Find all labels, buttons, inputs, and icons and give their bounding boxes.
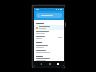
button[interactable]: Back [39,62,42,65]
button[interactable]: Search [36,13,62,18]
button[interactable]: Recent apps [56,62,59,65]
button[interactable] [34,44,64,49]
other: Search [38,15,40,17]
button[interactable] [34,49,64,54]
button[interactable]: Home [48,62,51,65]
button[interactable] [34,35,64,40]
button[interactable] [34,58,64,61]
button[interactable] [34,25,64,30]
button[interactable] [34,30,64,35]
